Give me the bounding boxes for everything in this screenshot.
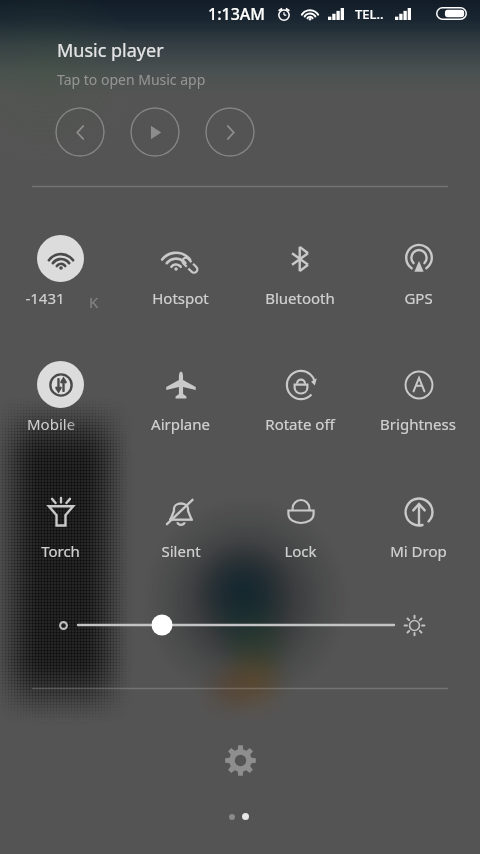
button[interactable]: Brightness	[370, 361, 466, 439]
staticText: Lock	[284, 541, 317, 561]
staticText: TEL..	[355, 5, 384, 23]
staticText: -1431	[25, 288, 65, 308]
button[interactable]: Settings	[218, 738, 262, 782]
button[interactable]: Mi Drop	[370, 488, 466, 566]
staticText: K	[89, 292, 99, 312]
staticText: Mi Drop	[390, 541, 447, 561]
staticText: Mobile data	[27, 414, 93, 432]
staticText: 1:13AM	[208, 3, 265, 25]
button[interactable]: Next	[205, 107, 255, 157]
button[interactable]: -1431	[12, 235, 108, 313]
staticText: Music player	[57, 38, 164, 63]
staticText: Rotate off	[265, 414, 335, 434]
staticText: Torch	[41, 541, 80, 561]
button[interactable]: Torch	[12, 488, 108, 566]
button[interactable]: Lock	[252, 488, 348, 566]
button[interactable]: Rotate off	[252, 361, 348, 439]
staticText: Tap to open Music app	[57, 70, 206, 89]
staticText: GPS	[404, 288, 433, 308]
button[interactable]: Mobile data	[12, 361, 108, 439]
button[interactable]: Airplane	[132, 361, 228, 439]
button[interactable]: Previous	[55, 107, 105, 157]
staticText: Silent	[161, 541, 201, 561]
staticText: Bluetooth	[265, 288, 335, 308]
staticText: Airplane	[151, 414, 210, 434]
button[interactable]: Bluetooth	[252, 235, 348, 313]
button[interactable]: Hotspot	[132, 235, 228, 313]
button[interactable]: Play	[130, 107, 180, 157]
button[interactable]: Music player	[57, 38, 206, 89]
button[interactable]: GPS	[370, 235, 466, 313]
button[interactable]: Silent	[132, 488, 228, 566]
staticText: Hotspot	[152, 288, 209, 308]
staticText: Brightness	[380, 414, 456, 434]
